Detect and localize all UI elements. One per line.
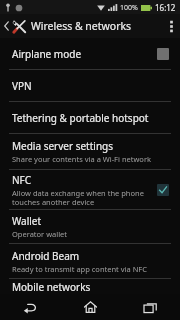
staticText: 16:12 [155,2,176,13]
button[interactable]: Home [60,294,120,320]
staticText: Operator wallet [12,229,68,239]
staticText: Share your contents via a Wi-Fi network [12,154,151,164]
button[interactable]: Airplane mode [0,38,180,69]
staticText: Media server settings [12,139,114,153]
button[interactable]: Mobile networks [0,279,180,294]
staticText: Wireless & networks [31,19,132,33]
staticText: 100% [120,3,138,13]
button[interactable]: Tethering & portable hotspot [0,102,180,133]
staticText: Wallet [12,214,42,228]
staticText: NFC [12,173,32,187]
button[interactable]: Media server settings [0,134,180,169]
button[interactable]: Navigate up [0,14,30,38]
button[interactable]: Recent apps [120,294,180,320]
staticText: Allow data exchange when the phone touch… [12,188,144,207]
button[interactable]: Wallet [0,210,180,243]
button[interactable]: More options [163,14,180,38]
staticText: Airplane mode [12,47,82,61]
staticText: Tethering & portable hotspot [12,111,149,125]
button[interactable]: NFC [0,170,180,209]
staticText: VPN [12,79,32,93]
button[interactable]: VPN [0,70,180,101]
button[interactable]: NFC checkbox [157,184,169,196]
button[interactable]: Back [0,294,60,320]
button[interactable]: Android Beam [0,244,180,278]
button[interactable]: Airplane mode checkbox [157,48,169,60]
staticText: Android Beam [12,249,80,263]
staticText: Ready to transmit app content via NFC [12,264,147,274]
staticText: Mobile networks [12,280,91,294]
